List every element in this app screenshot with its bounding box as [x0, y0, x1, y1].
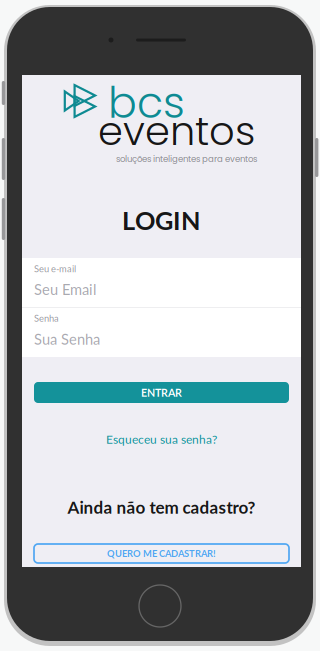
staticText: Seu e-mail	[34, 263, 76, 274]
staticText: QUERO ME CADASTRAR!	[107, 548, 216, 559]
staticText: eventos	[98, 103, 255, 143]
button[interactable]: QUERO ME CADASTRAR!	[34, 544, 289, 563]
staticText: Esqueceu sua senha?	[106, 432, 217, 446]
button[interactable]: Esqueceu sua senha?	[34, 428, 289, 450]
staticText: Seu Email	[34, 280, 96, 298]
staticText: bcs	[108, 73, 185, 113]
button[interactable]: ENTRAR	[34, 382, 289, 403]
staticText: soluções inteligentes para eventos	[116, 153, 257, 165]
staticText: Sua Senha	[34, 330, 100, 348]
staticText: Senha	[34, 313, 59, 324]
staticText: ENTRAR	[141, 386, 182, 399]
staticText: Ainda não tem cadastro?	[67, 497, 255, 517]
staticText: LOGIN	[122, 205, 201, 229]
